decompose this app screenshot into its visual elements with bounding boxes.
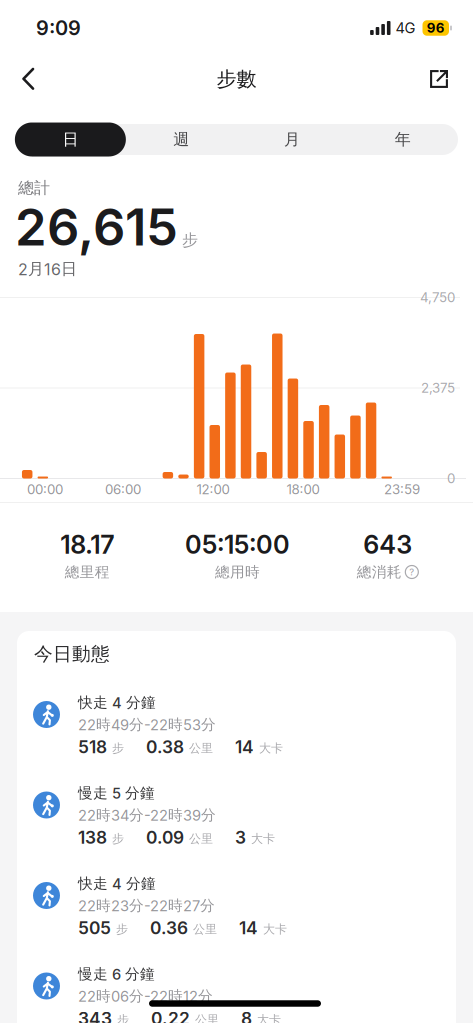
staticText: 0.36 [150, 918, 188, 938]
staticText: 518 [78, 737, 107, 757]
staticText: 週 [173, 130, 189, 149]
staticText: 14 [235, 737, 254, 757]
button[interactable]: 月 [236, 124, 347, 155]
staticText: 8 [241, 1008, 252, 1023]
staticText: 總用時 [215, 563, 260, 581]
staticText: 2,375 [421, 380, 455, 396]
staticText: 138 [78, 827, 107, 848]
staticText: 步數 [216, 67, 256, 91]
button[interactable]: 慢走 5 分鐘 [17, 778, 456, 868]
staticText: 公里 [189, 831, 213, 846]
staticText: 慢走 6 分鐘 [78, 965, 155, 983]
staticText: 96 [427, 20, 445, 36]
staticText: 343 [78, 1008, 112, 1023]
staticText: 12:00 [196, 482, 229, 497]
staticText: 步 [182, 230, 198, 250]
staticText: 9:09 [36, 16, 81, 40]
staticText: 總里程 [65, 563, 110, 581]
staticText: 公里 [193, 922, 217, 937]
staticText: 步 [116, 922, 128, 937]
staticText: 月 [284, 130, 300, 149]
button[interactable]: 慢走 6 分鐘 [17, 959, 456, 1023]
staticText: 大卡 [263, 922, 287, 937]
button[interactable]: 快走 4 分鐘 [17, 868, 456, 959]
staticText: 公里 [189, 741, 213, 756]
staticText: 4,750 [420, 290, 455, 305]
staticText: 22時34分-22時39分 [78, 806, 216, 824]
staticText: 快走 4 分鐘 [78, 874, 156, 892]
staticText: 步 [112, 831, 124, 846]
staticText: 年 [395, 130, 411, 149]
staticText: 快走 4 分鐘 [78, 693, 156, 711]
staticText: 大卡 [259, 741, 283, 756]
staticText: 大卡 [251, 831, 275, 846]
staticText: 14 [239, 918, 258, 938]
staticText: 總計 [18, 178, 50, 198]
staticText: 18:00 [286, 482, 319, 497]
staticText: 26,615 [15, 197, 178, 257]
button[interactable]: 週 [126, 124, 237, 155]
staticText: 日 [62, 130, 78, 149]
staticText: 慢走 5 分鐘 [78, 784, 155, 802]
staticText: 步 [117, 1012, 129, 1023]
staticText: 23:59 [384, 482, 420, 497]
staticText: 06:00 [105, 482, 141, 497]
staticText: 3 [235, 827, 246, 848]
button[interactable] [0, 67, 41, 91]
staticText: 22時06分-22時12分 [78, 987, 213, 1005]
staticText: 22時23分-22時27分 [78, 896, 215, 914]
button[interactable]: 日 [15, 122, 126, 156]
staticText: 2月16日 [18, 259, 77, 279]
staticText: 公里 [195, 1012, 219, 1023]
staticText: 0.38 [146, 737, 184, 757]
staticText: 0 [447, 471, 455, 486]
staticText: 505 [78, 918, 111, 938]
button[interactable]: ? [405, 565, 419, 579]
button[interactable]: 年 [347, 124, 458, 155]
staticText: 22時49分-22時53分 [78, 715, 216, 733]
staticText: 4G [395, 19, 415, 37]
staticText: ? [409, 566, 414, 577]
staticText: 05:15:00 [185, 530, 290, 559]
button[interactable] [430, 70, 473, 88]
staticText: 18.17 [60, 530, 114, 559]
staticText: 總消耗 [357, 563, 402, 581]
staticText: 大卡 [257, 1012, 281, 1023]
button[interactable]: 快走 4 分鐘 [17, 687, 456, 778]
staticText: 步 [112, 741, 124, 756]
staticText: 643 [363, 530, 412, 559]
staticText: 今日動態 [34, 642, 110, 665]
staticText: 0.09 [146, 827, 184, 848]
staticText: 00:00 [27, 482, 63, 497]
staticText: 0.22 [151, 1008, 190, 1023]
